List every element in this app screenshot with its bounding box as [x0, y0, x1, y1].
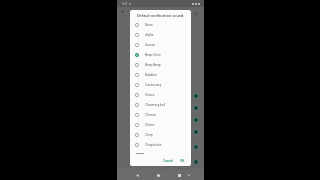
button[interactable]: Navigate up [119, 8, 126, 15]
staticText: OK [180, 159, 185, 163]
button[interactable]: Charming bell [130, 100, 191, 110]
button[interactable]: Chirp [130, 130, 191, 140]
staticText: 9:41 [122, 2, 128, 5]
button[interactable]: Beep-Beep [130, 60, 191, 70]
button[interactable]: Chaos [130, 90, 191, 100]
staticText: Beep Once [145, 53, 161, 57]
staticText: None [145, 23, 153, 27]
staticText: Beep-Beep [145, 63, 161, 67]
button[interactable]: None [130, 20, 191, 30]
staticText: Aurora [145, 43, 155, 47]
button[interactable]: Switch keyboard [185, 171, 193, 179]
button[interactable]: Account [193, 10, 199, 16]
staticText: Charming bell [145, 103, 166, 107]
staticText: Chopsticks [145, 143, 162, 147]
button[interactable]: Cheese [130, 110, 191, 120]
staticText: Bubbles [145, 73, 157, 77]
button[interactable]: Bubbles [130, 70, 191, 80]
button[interactable]: Beep Once [130, 50, 191, 60]
button[interactable]: Back [133, 171, 141, 179]
button[interactable]: Alpha [130, 30, 191, 40]
staticText: Cancel [163, 159, 174, 163]
staticText: Cassowary [145, 83, 162, 87]
button[interactable]: Chime [130, 120, 191, 130]
button[interactable]: Aurora [130, 40, 191, 50]
staticText: Chime [145, 123, 155, 127]
button[interactable]: OK [178, 157, 187, 165]
staticText: Chaos [145, 93, 155, 97]
button[interactable]: Home [154, 171, 162, 179]
button[interactable]: Recent apps [175, 171, 183, 179]
staticText: Alpha [145, 33, 154, 37]
button[interactable]: Cassowary [130, 80, 191, 90]
button[interactable]: Cancel [161, 157, 176, 165]
staticText: Chirp [145, 133, 153, 137]
button[interactable]: Chopsticks [130, 140, 191, 150]
staticText: Cheese [145, 113, 156, 117]
staticText: Default notification sound [137, 13, 184, 18]
